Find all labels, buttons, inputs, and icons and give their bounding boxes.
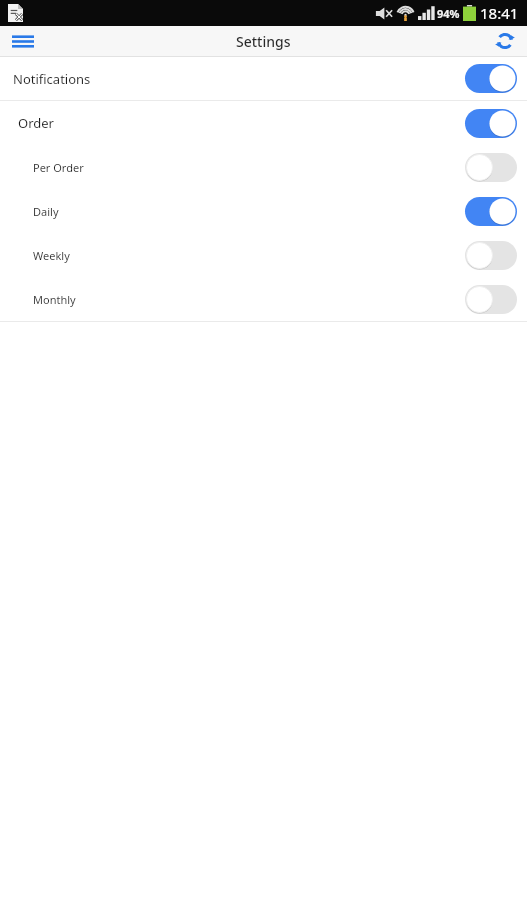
button[interactable]: Open navigation menu [0, 26, 46, 56]
staticText: Notifications [13, 70, 91, 88]
button[interactable]: Off [465, 241, 517, 270]
staticText: Settings [236, 32, 291, 51]
button[interactable]: Notifications [0, 57, 527, 100]
staticText: Monthly [33, 292, 76, 307]
button[interactable]: Monthly [0, 277, 527, 321]
button[interactable]: On [465, 109, 517, 138]
button[interactable]: Off [465, 285, 517, 314]
staticText: Order [18, 114, 54, 132]
button[interactable]: Order [0, 101, 527, 145]
button[interactable]: Weekly [0, 233, 527, 277]
button[interactable]: Per Order [0, 145, 527, 189]
button[interactable]: Refresh [483, 26, 527, 56]
button[interactable]: Daily [0, 189, 527, 233]
staticText: Daily [33, 204, 59, 219]
button[interactable]: Off [465, 153, 517, 182]
staticText: Weekly [33, 248, 70, 263]
staticText: Per Order [33, 160, 84, 175]
staticText: 94% [437, 6, 460, 21]
button[interactable]: On [465, 197, 517, 226]
staticText: 18:41 [480, 3, 519, 23]
button[interactable]: On [465, 64, 517, 93]
